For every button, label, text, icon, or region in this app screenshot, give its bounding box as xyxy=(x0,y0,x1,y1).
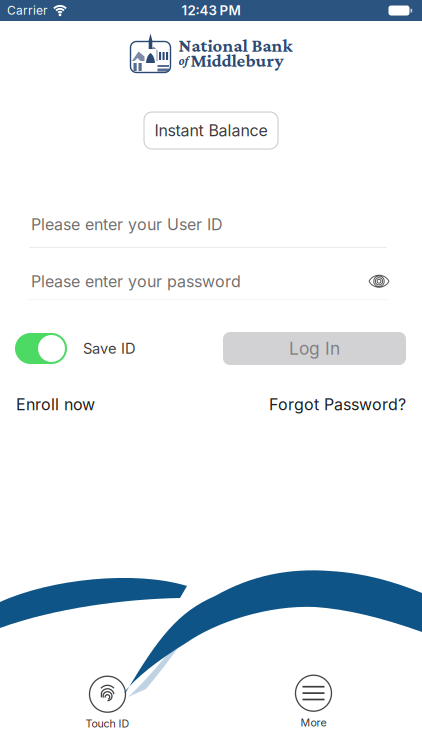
button[interactable]: Show password xyxy=(369,274,389,288)
button[interactable]: More xyxy=(295,675,331,729)
staticText: Instant Balance xyxy=(154,121,267,140)
staticText: More xyxy=(300,716,326,729)
staticText: Middlebury xyxy=(190,50,283,71)
button[interactable]: Instant Balance xyxy=(144,112,278,149)
button[interactable]: Please enter your password xyxy=(0,272,422,291)
button[interactable]: Enroll now xyxy=(16,395,95,414)
staticText: Touch ID xyxy=(85,717,129,730)
staticText: of xyxy=(178,53,188,68)
staticText: Log In xyxy=(289,338,340,359)
staticText: Please enter your password xyxy=(31,272,241,291)
button[interactable]: Touch ID xyxy=(85,676,129,730)
staticText: Enroll now xyxy=(16,395,95,414)
staticText: Please enter your User ID xyxy=(31,215,223,234)
button[interactable]: Log In xyxy=(223,332,406,365)
staticText: Carrier xyxy=(7,3,48,18)
staticText: Save ID xyxy=(83,340,136,357)
button[interactable]: Please enter your User ID xyxy=(0,215,422,248)
button[interactable]: Save ID xyxy=(15,333,67,364)
button[interactable]: Forgot Password? xyxy=(269,395,406,414)
staticText: 12:43 PM xyxy=(181,3,240,18)
staticText: National Bank xyxy=(178,35,292,56)
staticText: Forgot Password? xyxy=(269,395,406,414)
